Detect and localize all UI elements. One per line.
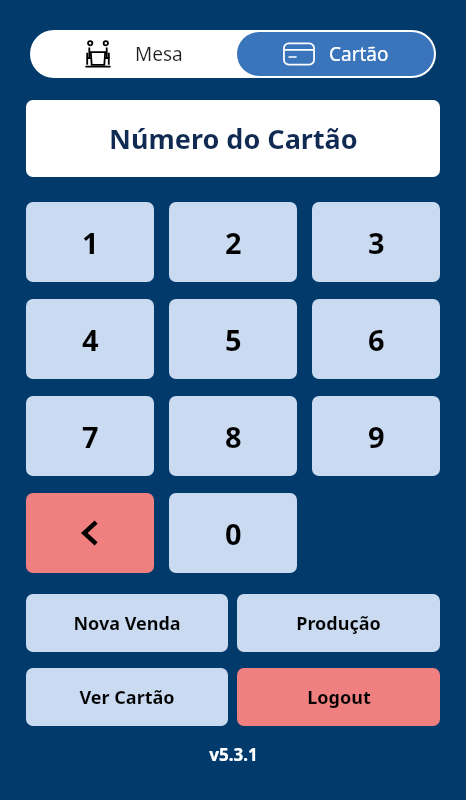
staticText: Produção — [296, 611, 381, 636]
button[interactable]: Logout — [237, 668, 440, 726]
staticText: 5 — [225, 320, 242, 359]
button[interactable]: Número do Cartão — [26, 100, 440, 177]
button[interactable]: 6 — [312, 299, 440, 379]
staticText: Número do Cartão — [109, 120, 358, 157]
staticText: 2 — [225, 223, 242, 262]
button[interactable]: Nova Venda — [26, 594, 228, 652]
staticText: Nova Venda — [73, 611, 181, 636]
staticText: 0 — [225, 514, 242, 553]
button[interactable]: Ver Cartão — [26, 668, 228, 726]
button[interactable]: Mesa — [30, 30, 235, 78]
button[interactable]: Produção — [237, 594, 440, 652]
staticText: Logout — [307, 685, 371, 710]
button[interactable]: 1 — [26, 202, 154, 282]
staticText: 7 — [82, 417, 99, 456]
button[interactable]: 4 — [26, 299, 154, 379]
button[interactable]: Backspace — [26, 493, 154, 573]
staticText: 6 — [368, 320, 385, 359]
button[interactable]: 3 — [312, 202, 440, 282]
staticText: 3 — [368, 223, 385, 262]
staticText: 4 — [82, 320, 99, 359]
button[interactable]: 5 — [169, 299, 297, 379]
staticText: 1 — [82, 223, 99, 262]
staticText: Cartão — [329, 41, 389, 67]
button[interactable]: 9 — [312, 396, 440, 476]
staticText: Ver Cartão — [79, 685, 175, 710]
button[interactable]: Cartão — [237, 32, 434, 76]
staticText: 9 — [368, 417, 385, 456]
staticText: v5.3.1 — [209, 743, 258, 766]
button[interactable]: 7 — [26, 396, 154, 476]
staticText: 8 — [225, 417, 242, 456]
button[interactable]: 0 — [169, 493, 297, 573]
button[interactable]: 2 — [169, 202, 297, 282]
staticText: Mesa — [135, 41, 183, 67]
button[interactable]: 8 — [169, 396, 297, 476]
